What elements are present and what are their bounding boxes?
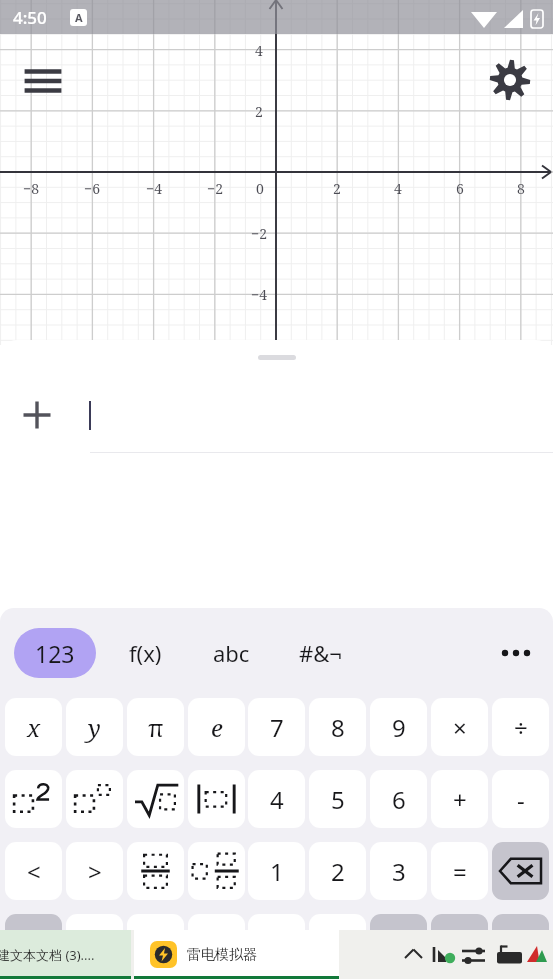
button[interactable]: Key: [492, 914, 549, 942]
button[interactable]: 123: [14, 628, 96, 678]
button[interactable]: ÷: [492, 698, 549, 756]
button[interactable]: e: [188, 698, 245, 756]
staticText: e: [211, 711, 223, 744]
staticText: −6: [84, 179, 100, 198]
staticText: 8: [331, 711, 345, 744]
staticText: =: [453, 855, 467, 888]
button[interactable]: Math key: [66, 770, 123, 828]
button[interactable]: Math key: [188, 770, 245, 828]
button[interactable]: abc: [200, 628, 262, 678]
button[interactable]: y: [66, 698, 123, 756]
staticText: f(x): [129, 638, 162, 668]
button[interactable]: 8: [309, 698, 366, 756]
staticText: 4: [270, 783, 284, 816]
staticText: 6: [456, 179, 464, 198]
button[interactable]: Key: [66, 914, 123, 942]
staticText: >: [88, 855, 102, 888]
staticText: −4: [146, 179, 162, 198]
staticText: ÷: [514, 711, 528, 744]
staticText: ×: [453, 711, 467, 744]
staticText: 4: [255, 41, 263, 60]
staticText: #&¬: [299, 638, 342, 668]
button[interactable]: Key: [309, 914, 366, 942]
button[interactable]: 7: [248, 698, 305, 756]
staticText: 123: [35, 638, 75, 669]
staticText: 雷电模拟器: [187, 946, 257, 964]
button[interactable]: 1: [248, 842, 305, 900]
staticText: 3: [392, 855, 406, 888]
staticText: y: [88, 711, 101, 744]
staticText: −8: [23, 179, 39, 198]
button[interactable]: Settings: [487, 57, 533, 103]
button[interactable]: Math key: [127, 770, 184, 828]
staticText: x: [27, 711, 41, 744]
staticText: 建文本文档 (3)....: [0, 946, 95, 964]
button[interactable]: f(x): [116, 628, 174, 678]
button[interactable]: 3: [370, 842, 427, 900]
button[interactable]: 建文本文档 (3)....: [0, 930, 131, 979]
button[interactable]: Math key: [127, 842, 184, 900]
button[interactable]: ×: [431, 698, 488, 756]
button[interactable]: Menu: [20, 58, 66, 104]
staticText: 0: [256, 179, 264, 198]
button[interactable]: Math key: [188, 842, 245, 900]
button[interactable]: <: [5, 842, 62, 900]
staticText: 4:50: [13, 6, 47, 29]
staticText: 2: [333, 179, 341, 198]
button[interactable]: =: [431, 842, 488, 900]
staticText: 1: [270, 855, 284, 888]
button[interactable]: 5: [309, 770, 366, 828]
staticText: 2: [331, 855, 345, 888]
button[interactable]: 9: [370, 698, 427, 756]
button[interactable]: x: [5, 698, 62, 756]
button[interactable]: 雷电模拟器: [134, 930, 339, 979]
staticText: +: [453, 783, 467, 816]
staticText: abc: [213, 638, 250, 668]
button[interactable]: +: [431, 770, 488, 828]
button[interactable]: 4: [248, 770, 305, 828]
button[interactable]: #&¬: [286, 628, 354, 678]
button[interactable]: 6: [370, 770, 427, 828]
staticText: -: [517, 783, 525, 816]
staticText: −2: [251, 224, 267, 243]
staticText: −2: [207, 179, 223, 198]
button[interactable]: Add expression: [14, 392, 60, 438]
button[interactable]: Key: [431, 914, 488, 942]
button[interactable]: -: [492, 770, 549, 828]
button[interactable]: >: [66, 842, 123, 900]
staticText: 5: [331, 783, 345, 816]
button[interactable]: π: [127, 698, 184, 756]
button[interactable]: Key: [127, 914, 184, 942]
staticText: 6: [392, 783, 406, 816]
staticText: 7: [270, 711, 284, 744]
staticText: 9: [392, 711, 406, 744]
button[interactable]: Math key: [492, 842, 549, 900]
button[interactable]: 2: [309, 842, 366, 900]
staticText: A: [75, 10, 83, 25]
staticText: π: [148, 711, 164, 744]
staticText: 2: [255, 102, 263, 121]
button[interactable]: Key: [370, 914, 427, 942]
button[interactable]: Key: [5, 914, 62, 942]
staticText: 8: [517, 179, 525, 198]
button[interactable]: Math key: [5, 770, 62, 828]
staticText: −4: [251, 285, 267, 304]
staticText: 4: [394, 179, 402, 198]
staticText: <: [27, 855, 41, 888]
button[interactable]: More options: [492, 629, 540, 677]
